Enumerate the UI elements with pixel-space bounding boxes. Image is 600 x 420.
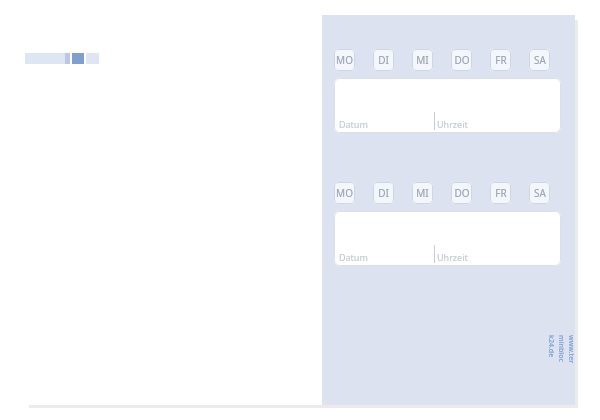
button[interactable]: MO	[334, 182, 355, 204]
staticText: DO	[454, 53, 470, 67]
staticText: www.terminblock24.de	[546, 335, 576, 365]
staticText: DI	[378, 186, 389, 200]
staticText: MO	[336, 186, 353, 200]
staticText: MO	[336, 53, 353, 67]
staticText: SA	[534, 53, 546, 67]
staticText: Datum	[339, 251, 368, 263]
button[interactable]: MI	[412, 49, 433, 71]
staticText: Datum	[339, 118, 368, 130]
button[interactable]: Datum	[334, 78, 561, 133]
staticText: MI	[416, 53, 429, 67]
staticText: FR	[495, 186, 507, 200]
button[interactable]: FR	[490, 182, 511, 204]
staticText: SA	[534, 186, 546, 200]
button[interactable]: DO	[451, 182, 472, 204]
staticText: DO	[454, 186, 470, 200]
staticText: Uhrzeit	[437, 118, 468, 130]
button[interactable]: DI	[373, 182, 394, 204]
button[interactable]: DO	[451, 49, 472, 71]
button[interactable]: Terminblock logo	[25, 53, 99, 64]
button[interactable]: Datum	[334, 211, 561, 266]
button[interactable]: MO	[334, 49, 355, 71]
button[interactable]: SA	[529, 49, 550, 71]
staticText: MI	[416, 186, 429, 200]
staticText: FR	[495, 53, 507, 67]
staticText: Uhrzeit	[437, 251, 468, 263]
button[interactable]: MI	[412, 182, 433, 204]
staticText: DI	[378, 53, 389, 67]
button[interactable]: SA	[529, 182, 550, 204]
button[interactable]: DI	[373, 49, 394, 71]
button[interactable]: FR	[490, 49, 511, 71]
